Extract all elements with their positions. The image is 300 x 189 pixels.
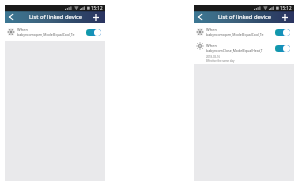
button[interactable]: When — [194, 41, 294, 64]
button[interactable]: Back — [5, 11, 16, 23]
staticText: When — [206, 27, 217, 32]
staticText: babyroomopen,ModelEqualCool,Te — [206, 32, 264, 37]
button[interactable]: When — [5, 23, 105, 41]
staticText: babyroomClose,ModelEqualHeat,T — [206, 48, 263, 53]
staticText: 15:12 — [91, 5, 103, 11]
staticText: List of linked device — [29, 13, 83, 21]
button[interactable]: Toggle rule — [275, 45, 290, 52]
staticText: 15:12 — [280, 5, 292, 11]
button[interactable]: Toggle rule — [275, 29, 290, 36]
staticText: List of linked device — [218, 13, 272, 21]
button[interactable]: Toggle rule — [86, 29, 101, 36]
button[interactable]: Add device — [275, 11, 294, 23]
staticText: When — [17, 27, 28, 32]
button[interactable]: Back — [194, 11, 205, 23]
staticText: babyroomopen,ModelEqualCool,Te — [17, 32, 75, 37]
staticText: Effective the same day — [206, 59, 235, 63]
staticText: When — [206, 43, 217, 48]
button[interactable]: When — [194, 23, 294, 41]
button[interactable]: Add device — [86, 11, 105, 23]
staticText: 2018-03-16 — [206, 55, 221, 59]
